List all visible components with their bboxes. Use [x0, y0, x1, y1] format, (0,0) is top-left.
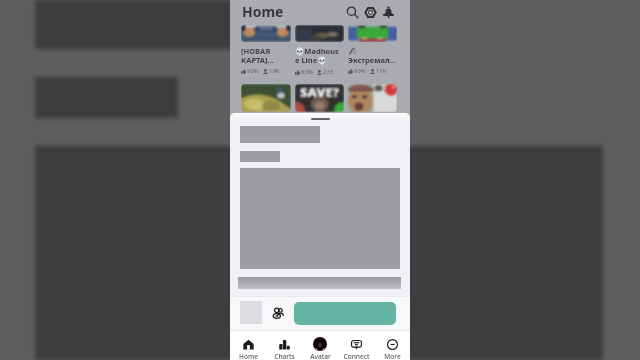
staticText: Charts — [274, 352, 295, 360]
staticText: Avatar — [310, 352, 331, 360]
button[interactable]: Connect — [338, 331, 374, 360]
button[interactable]: Game — [241, 25, 291, 42]
staticText: 💀Madhous e Line💀 — [295, 46, 339, 66]
staticText: Home — [239, 352, 258, 360]
button[interactable]: Game — [241, 84, 291, 112]
button[interactable]: Avatar — [302, 331, 338, 360]
staticText: Экстремал... — [348, 55, 396, 65]
staticText: Home — [242, 2, 284, 21]
staticText: 93% — [354, 67, 366, 75]
button[interactable]: Charts — [266, 331, 302, 360]
button[interactable]: Game — [295, 84, 344, 112]
button[interactable]: Notifications — [380, 4, 397, 21]
button[interactable]: More — [374, 331, 410, 360]
staticText: 11K — [376, 67, 387, 75]
staticText: 83% — [301, 68, 313, 76]
button[interactable]: Game — [295, 25, 344, 42]
staticText: SAVE? — [300, 84, 340, 101]
button[interactable]: Search — [344, 4, 361, 21]
button[interactable]: Home — [230, 331, 266, 360]
button[interactable]: Play — [294, 302, 396, 325]
staticText: More — [384, 352, 401, 360]
button[interactable]: Friends — [272, 307, 284, 319]
staticText: 19K — [269, 67, 280, 75]
staticText: [НОВАЯ КАРТА]... — [241, 46, 274, 65]
staticText: Connect — [343, 352, 370, 360]
staticText: 90% — [247, 67, 259, 75]
button[interactable]: Game — [348, 84, 397, 112]
staticText: 233 — [323, 68, 334, 76]
button[interactable]: Robux — [362, 4, 379, 21]
button[interactable]: Game — [348, 25, 397, 42]
